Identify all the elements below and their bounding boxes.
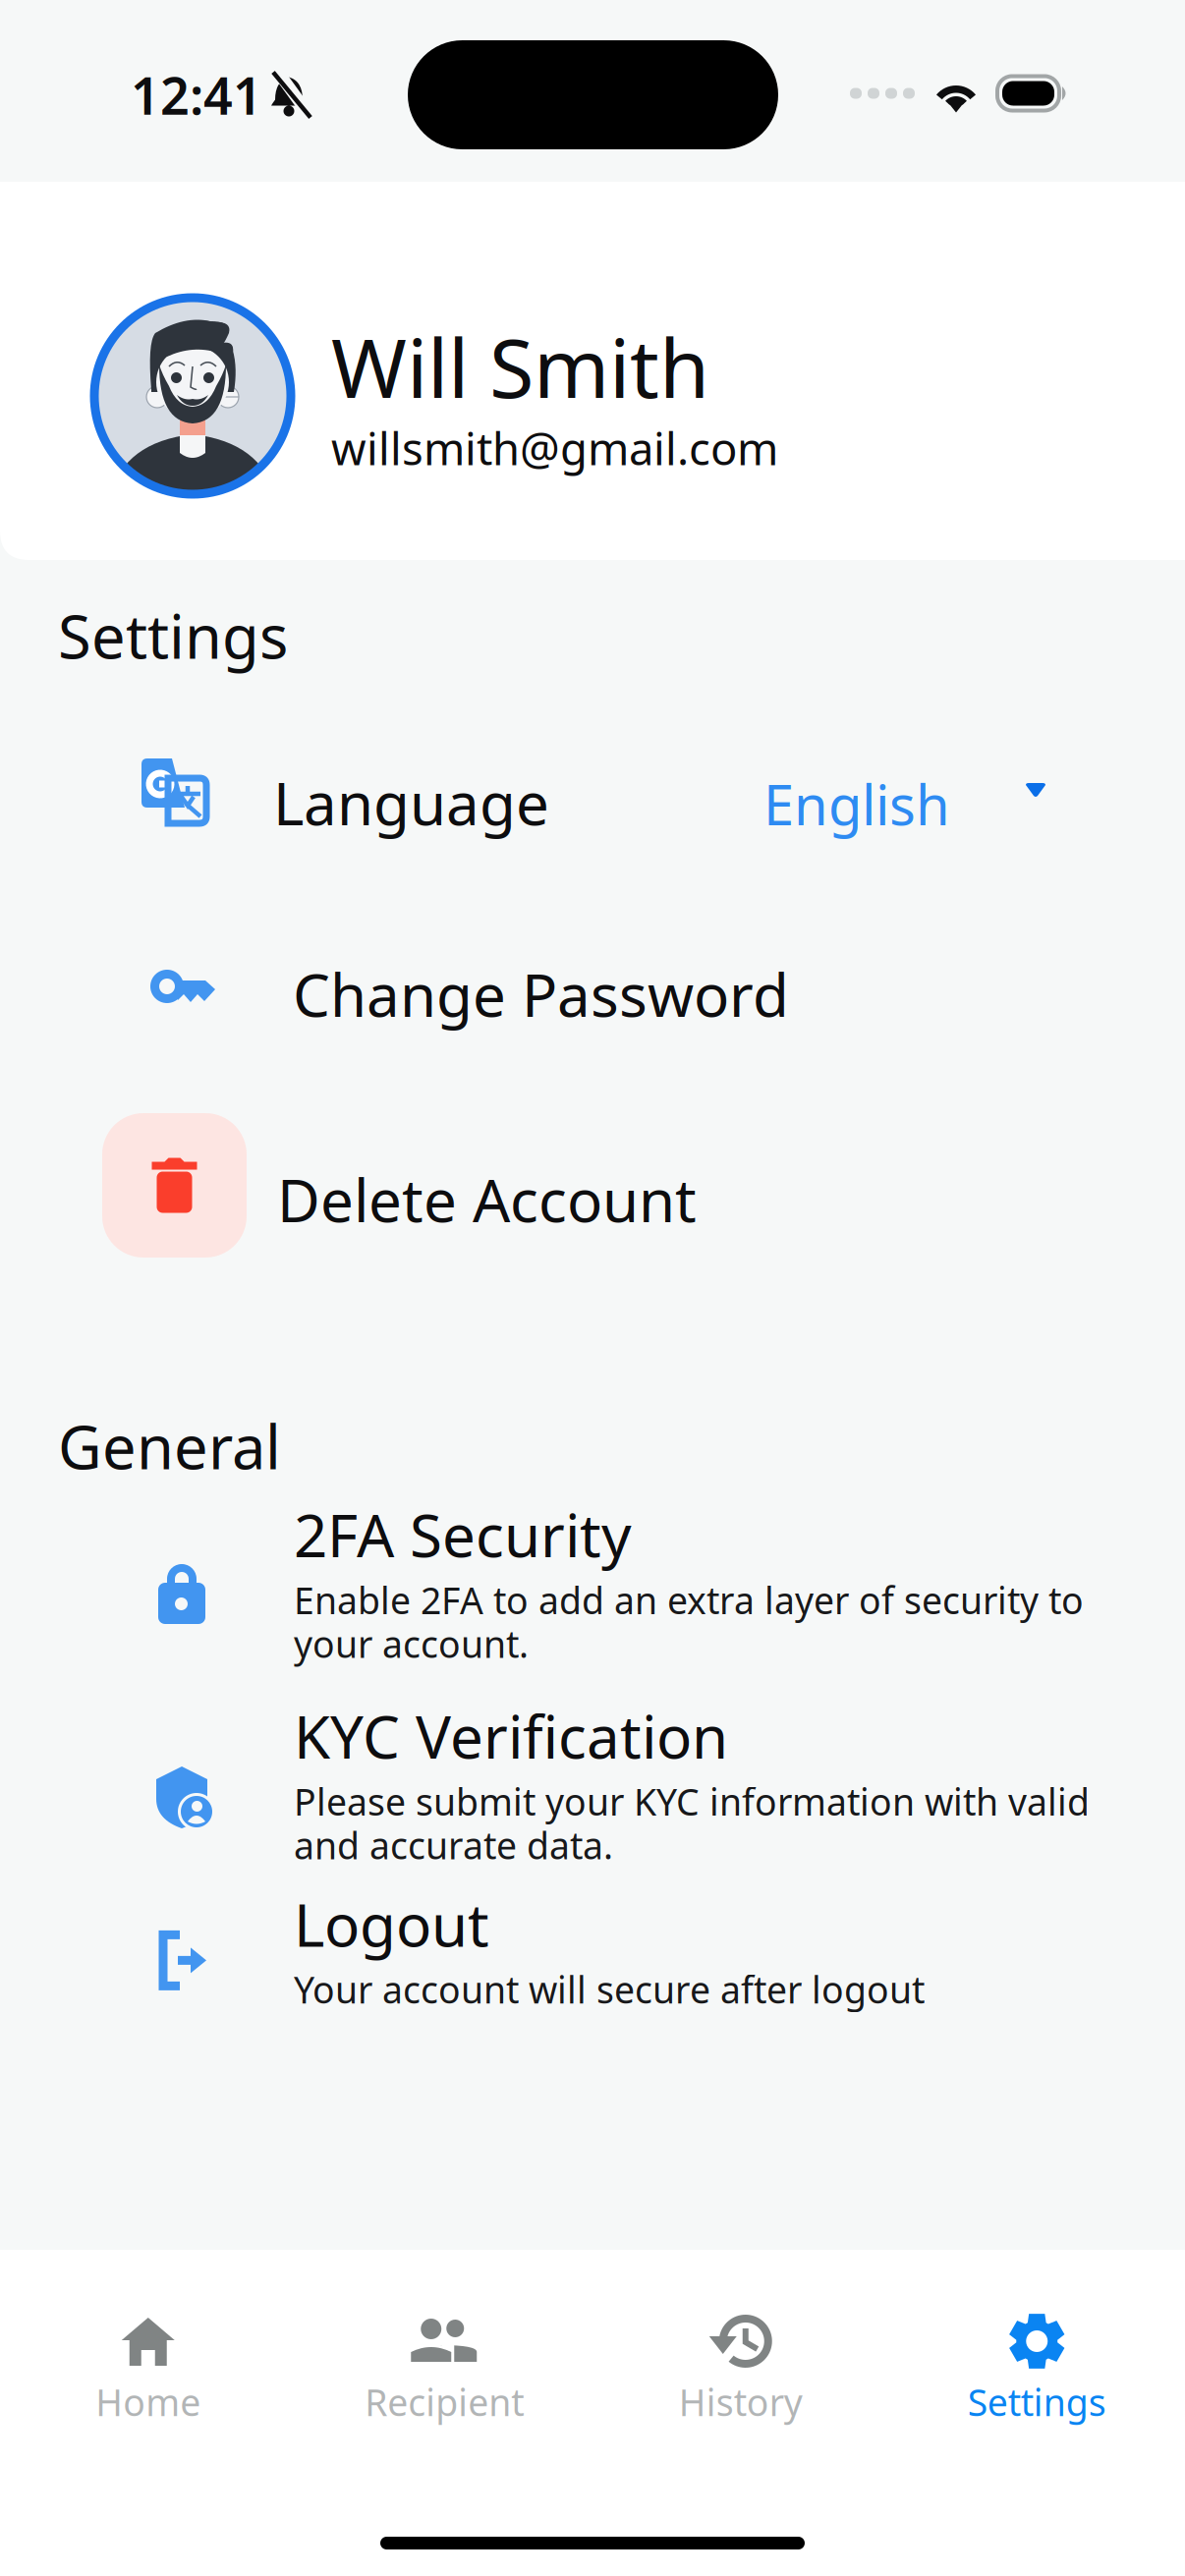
staticText: Change Password	[293, 955, 789, 1033]
button[interactable]: Logout	[0, 1885, 1185, 2013]
staticText: Settings	[968, 2378, 1106, 2426]
staticText: Recipient	[365, 2378, 524, 2426]
staticText: Home	[96, 2378, 201, 2426]
button[interactable]: Change Password	[0, 945, 1185, 1036]
staticText: Please submit your KYC information with …	[294, 1777, 1090, 1870]
staticText: KYC Verification	[294, 1697, 728, 1775]
staticText: 2FA Security	[294, 1495, 632, 1574]
button[interactable]: Settings	[889, 2303, 1185, 2436]
staticText: Your account will secure after logout	[294, 1965, 925, 2014]
staticText: 12:41	[131, 61, 262, 129]
button[interactable]: Language	[0, 732, 1185, 850]
staticText: Logout	[294, 1885, 489, 1963]
staticText: English	[763, 767, 950, 840]
staticText: Settings	[58, 595, 288, 675]
button[interactable]: 2FA Security	[0, 1495, 1185, 1677]
button[interactable]: Home	[0, 2303, 296, 2436]
staticText: General	[58, 1406, 281, 1486]
button[interactable]: History	[592, 2303, 889, 2436]
staticText: Enable 2FA to add an extra layer of secu…	[294, 1576, 1084, 1668]
button[interactable]: KYC Verification	[0, 1697, 1185, 1878]
button[interactable]: Delete Account	[0, 1113, 1185, 1258]
staticText: Language	[273, 763, 549, 842]
staticText: Delete Account	[277, 1160, 697, 1239]
staticText: History	[679, 2378, 803, 2426]
button[interactable]: Recipient	[296, 2303, 592, 2436]
staticText: willsmith@gmail.com	[331, 418, 778, 477]
staticText: Will Smith	[331, 312, 709, 420]
